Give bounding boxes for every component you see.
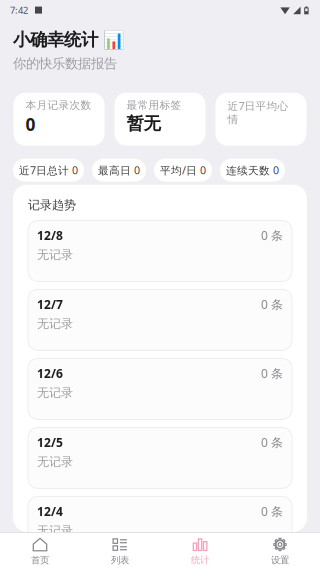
staticText: 12/7	[37, 296, 63, 312]
button[interactable]: 最高日 0	[92, 159, 146, 182]
button[interactable]: 首页	[0, 533, 80, 567]
button[interactable]: 设置	[240, 533, 320, 567]
staticText: 统计	[191, 554, 209, 566]
staticText: 本月记录次数	[25, 99, 91, 112]
staticText: 最高日 0	[98, 163, 140, 177]
staticText: 连续天数 0	[226, 163, 279, 177]
staticText: 0 条	[261, 503, 283, 519]
staticText: 首页	[31, 554, 49, 566]
staticText: 列表	[111, 554, 129, 566]
staticText: 最常用标签	[126, 99, 181, 112]
staticText: 0 条	[261, 434, 283, 450]
staticText: 你的快乐数据报告	[13, 55, 117, 72]
staticText: 记录趋势	[28, 198, 76, 212]
staticText: 0 条	[261, 365, 283, 381]
staticText: 12/4	[37, 503, 63, 519]
staticText: 平均/日 0	[160, 163, 206, 177]
button[interactable]: 12/7	[28, 289, 292, 350]
staticText: 近7日总计 0	[19, 163, 78, 177]
staticText: 12/6	[37, 365, 63, 381]
button[interactable]: 12/8	[28, 220, 292, 281]
staticText: 7:42	[10, 4, 28, 16]
button[interactable]: 近7日总计 0	[13, 159, 84, 182]
staticText: 无记录	[37, 523, 73, 538]
staticText: 无记录	[37, 316, 73, 331]
button[interactable]: 连续天数 0	[220, 159, 285, 182]
button[interactable]: 12/5	[28, 427, 292, 488]
staticText: 12/5	[37, 434, 63, 450]
button[interactable]: 列表	[80, 533, 160, 567]
staticText: 无记录	[37, 454, 73, 469]
staticText: 0 条	[261, 227, 283, 243]
staticText: 无记录	[37, 385, 73, 400]
button[interactable]: 统计	[160, 533, 240, 567]
button[interactable]: 平均/日 0	[154, 159, 212, 182]
staticText: 暂无	[126, 113, 160, 134]
staticText: 0	[25, 113, 35, 136]
staticText: 小确幸统计 📊	[13, 29, 125, 50]
staticText: 0 条	[261, 296, 283, 312]
button[interactable]: 12/6	[28, 358, 292, 419]
staticText: 12/8	[37, 227, 63, 243]
button[interactable]: 12/4	[28, 496, 292, 557]
staticText: 近7日平均心情	[227, 99, 288, 126]
staticText: 无记录	[37, 247, 73, 262]
staticText: 设置	[271, 554, 289, 566]
